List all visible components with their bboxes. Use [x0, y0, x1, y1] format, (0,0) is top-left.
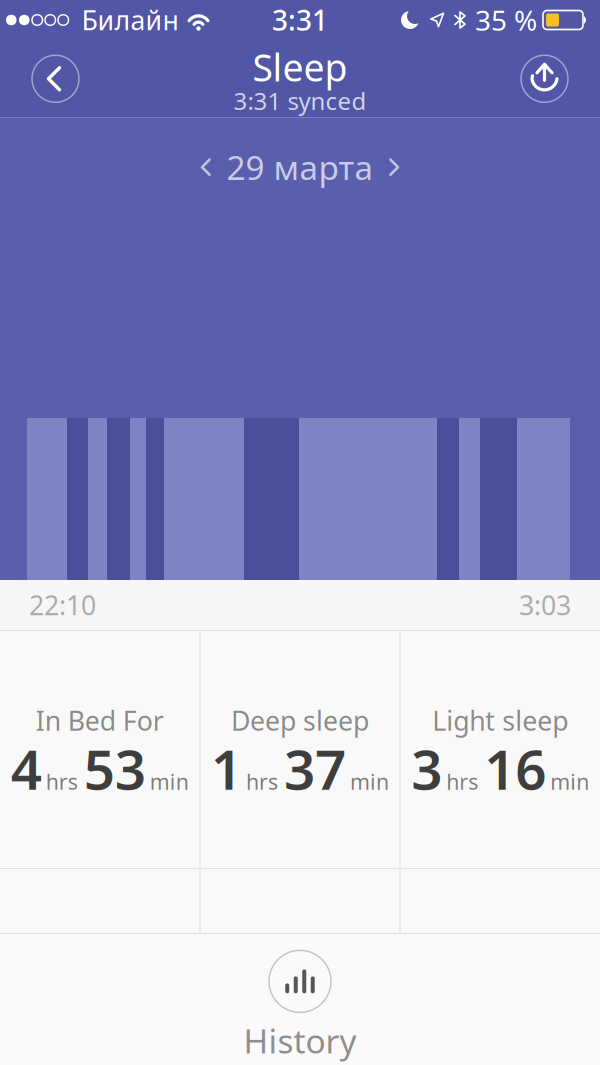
- staticText: 37: [284, 732, 346, 805]
- button[interactable]: History: [243, 950, 356, 1063]
- staticText: hrs: [246, 767, 278, 796]
- staticText: 3:03: [519, 587, 571, 623]
- staticText: 4: [11, 732, 42, 805]
- staticText: 16: [484, 732, 546, 805]
- button[interactable]: [198, 157, 212, 178]
- staticText: 3: [411, 732, 442, 805]
- staticText: 29 марта: [226, 145, 373, 189]
- button[interactable]: [387, 157, 401, 178]
- staticText: 1: [211, 732, 242, 805]
- staticText: History: [243, 1018, 356, 1063]
- staticText: Deep sleep: [231, 703, 369, 738]
- staticText: min: [150, 767, 189, 796]
- staticText: Light sleep: [432, 703, 568, 738]
- staticText: 22:10: [29, 587, 96, 623]
- staticText: Sleep: [252, 42, 347, 92]
- staticText: 3:31: [272, 1, 328, 39]
- button[interactable]: [521, 55, 568, 102]
- staticText: 35 %: [475, 1, 537, 39]
- staticText: In Bed For: [36, 703, 164, 738]
- button[interactable]: [32, 55, 79, 102]
- staticText: min: [350, 767, 389, 796]
- staticText: 53: [84, 732, 146, 805]
- staticText: hrs: [446, 767, 478, 796]
- staticText: 3:31 synced: [233, 85, 366, 117]
- staticText: min: [550, 767, 589, 796]
- staticText: Билайн: [81, 2, 178, 38]
- staticText: hrs: [46, 767, 78, 796]
